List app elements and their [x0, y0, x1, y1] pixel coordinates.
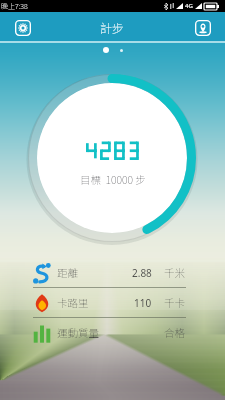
button[interactable]: 距離 — [33, 258, 186, 287]
button[interactable]: 卡路里 — [33, 288, 186, 317]
staticText: 晚上7:38 — [1, 1, 28, 11]
staticText: 運動質量 — [57, 325, 99, 340]
staticText: 距離 — [57, 265, 78, 280]
staticText: 計步 — [100, 19, 125, 36]
staticText: 4G — [185, 2, 193, 10]
button[interactable]: 運動質量 — [33, 318, 186, 347]
staticText: 千卡 — [164, 295, 185, 310]
button[interactable]: Settings — [13, 18, 33, 38]
button[interactable]: Map location — [193, 18, 213, 38]
staticText: 110 — [134, 296, 152, 310]
staticText: 目標 10000 步 — [80, 172, 146, 187]
staticText: 合格 — [164, 325, 185, 340]
staticText: 卡路里 — [57, 295, 89, 310]
staticText: 2.88 — [132, 266, 152, 280]
staticText: 千米 — [164, 265, 185, 280]
